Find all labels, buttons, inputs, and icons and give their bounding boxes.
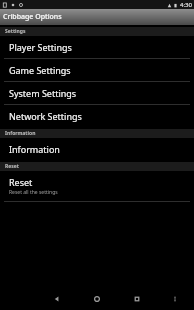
button[interactable]: Player Settings xyxy=(0,36,194,58)
staticText: Information xyxy=(5,130,36,137)
staticText: Information xyxy=(9,143,60,155)
button[interactable]: Game Settings xyxy=(0,59,194,81)
staticText: Reset xyxy=(9,176,33,188)
button[interactable]: Recent apps xyxy=(126,288,148,310)
staticText: System Settings xyxy=(9,87,77,99)
button[interactable]: Back xyxy=(46,288,68,310)
button[interactable]: Network Settings xyxy=(0,105,194,127)
button[interactable]: More options xyxy=(164,288,186,310)
staticText: Reset all the settings xyxy=(9,189,58,196)
staticText: Game Settings xyxy=(9,64,71,76)
staticText: Cribbage Options xyxy=(3,12,62,22)
button[interactable]: Reset xyxy=(0,171,194,201)
button[interactable]: Information xyxy=(0,138,194,160)
staticText: Reset xyxy=(5,163,19,170)
button[interactable]: Home xyxy=(86,288,108,310)
button[interactable]: System Settings xyxy=(0,82,194,104)
staticText: Player Settings xyxy=(9,41,72,53)
staticText: Network Settings xyxy=(9,110,82,122)
staticText: 4:30 xyxy=(180,1,192,9)
staticText: Settings xyxy=(5,28,26,35)
